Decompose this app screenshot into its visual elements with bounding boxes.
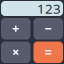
button[interactable]: Add: [1, 18, 30, 39]
button[interactable]: Multiply: [1, 41, 30, 63]
staticText: 123: [37, 0, 61, 17]
button[interactable]: Subtract: [33, 18, 63, 39]
button[interactable]: Equals: [33, 41, 63, 63]
